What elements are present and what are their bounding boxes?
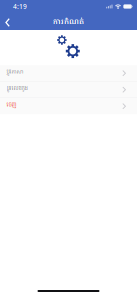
staticText: ការកំណត់	[53, 17, 84, 28]
staticText: ចេញ	[6, 101, 16, 109]
button[interactable]: ចេញ	[0, 98, 137, 114]
button[interactable]: ប្តូរភាសា	[0, 65, 137, 81]
staticText: 4:19	[13, 2, 27, 11]
staticText: ប្តូរលេខកូដ	[6, 85, 27, 92]
button[interactable]: Back	[0, 13, 18, 30]
staticText: ប្តូរភាសា	[6, 68, 23, 76]
button[interactable]: ប្តូរលេខកូដ	[0, 82, 137, 98]
